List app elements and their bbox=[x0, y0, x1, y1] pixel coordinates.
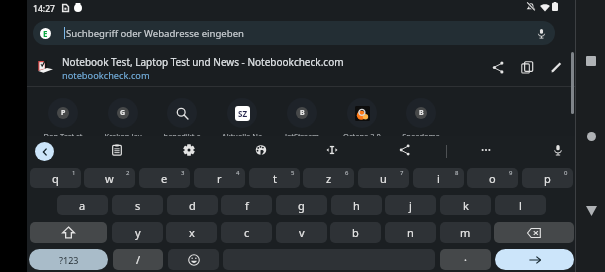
staticText: 4 bbox=[236, 169, 240, 177]
button[interactable] bbox=[168, 249, 219, 270]
staticText: B bbox=[300, 108, 305, 118]
staticText: 2 bbox=[126, 169, 130, 177]
staticText: 8 bbox=[455, 169, 459, 177]
button[interactable]: . bbox=[440, 249, 491, 270]
button[interactable]: s bbox=[112, 195, 163, 215]
staticText: d bbox=[189, 198, 196, 213]
button[interactable]: Keyboard action bbox=[251, 140, 271, 160]
staticText: Aktuelle Na bbox=[212, 131, 272, 141]
staticText: m bbox=[460, 225, 471, 240]
button[interactable] bbox=[347, 98, 377, 128]
staticText: Suchbegriff oder Webadresse eingeben bbox=[66, 27, 245, 40]
button[interactable]: w bbox=[84, 168, 135, 188]
button[interactable]: Notebook Test, Laptop Test und News - No… bbox=[27, 48, 575, 88]
button[interactable]: l bbox=[495, 195, 546, 215]
button[interactable]: o bbox=[467, 168, 518, 188]
staticText: 5 bbox=[291, 169, 295, 177]
button[interactable]: B bbox=[287, 98, 317, 128]
button[interactable]: f bbox=[221, 195, 272, 215]
button[interactable]: q bbox=[30, 168, 81, 188]
staticText: Speedome bbox=[391, 131, 451, 141]
button[interactable]: Keyboard action bbox=[322, 140, 342, 160]
staticText: w bbox=[105, 171, 114, 186]
button[interactable]: p bbox=[522, 168, 573, 188]
button[interactable]: Keyboard action bbox=[476, 140, 496, 160]
button[interactable]: P bbox=[48, 98, 78, 128]
staticText: y bbox=[135, 225, 141, 240]
button[interactable]: m bbox=[440, 222, 491, 243]
button[interactable]: g bbox=[276, 195, 327, 215]
button[interactable]: Keyboard action bbox=[179, 140, 199, 160]
staticText: G bbox=[120, 108, 126, 118]
staticText: . bbox=[464, 249, 467, 264]
staticText: i bbox=[437, 171, 440, 186]
button[interactable]: Home bbox=[579, 124, 603, 148]
button[interactable]: a bbox=[57, 195, 108, 215]
button[interactable]: Recents bbox=[579, 49, 603, 73]
staticText: ?123 bbox=[59, 254, 79, 266]
button[interactable]: y bbox=[112, 222, 163, 243]
button[interactable] bbox=[167, 98, 197, 128]
staticText: JetStream bbox=[272, 131, 332, 141]
button[interactable]: i bbox=[413, 168, 464, 188]
staticText: s bbox=[135, 198, 141, 213]
button[interactable]: u bbox=[358, 168, 409, 188]
staticText: h bbox=[353, 198, 360, 213]
button[interactable]: G bbox=[108, 98, 138, 128]
button[interactable]: k bbox=[440, 195, 491, 215]
button[interactable] bbox=[495, 249, 574, 270]
staticText: SZ bbox=[238, 108, 248, 119]
staticText: 14:27 bbox=[33, 3, 56, 15]
button[interactable]: SZ bbox=[227, 98, 257, 128]
staticText: g bbox=[298, 198, 305, 213]
button[interactable]: Keyboard action bbox=[107, 140, 127, 160]
button[interactable]: t bbox=[249, 168, 300, 188]
button[interactable] bbox=[30, 222, 107, 243]
staticText: 6 bbox=[345, 169, 349, 177]
staticText: l bbox=[519, 198, 522, 213]
staticText: p bbox=[544, 171, 551, 186]
staticText: x bbox=[189, 225, 195, 240]
button[interactable]: d bbox=[167, 195, 218, 215]
button[interactable]: x bbox=[166, 222, 217, 243]
staticText: k bbox=[463, 198, 469, 213]
button[interactable]: E bbox=[33, 21, 555, 45]
other: Share bbox=[492, 61, 505, 74]
other: Voice search bbox=[536, 28, 547, 39]
staticText: Krakon Jav bbox=[93, 131, 153, 141]
button[interactable]: Back bbox=[579, 199, 603, 223]
button[interactable]: b bbox=[330, 222, 381, 243]
staticText: a bbox=[79, 198, 86, 213]
button[interactable]: v bbox=[276, 222, 327, 243]
staticText: benedikt-s bbox=[152, 131, 212, 141]
button[interactable]: Back bbox=[35, 142, 54, 161]
staticText: 7 bbox=[400, 169, 404, 177]
staticText: o bbox=[489, 171, 496, 186]
button[interactable]: Keyboard action bbox=[395, 140, 415, 160]
button[interactable]: c bbox=[221, 222, 272, 243]
other: Copy bbox=[521, 61, 534, 74]
staticText: Octane 2.0 bbox=[332, 131, 392, 141]
button[interactable] bbox=[494, 222, 574, 243]
button[interactable]: B bbox=[406, 98, 436, 128]
button[interactable]: / bbox=[113, 249, 163, 270]
button[interactable]: h bbox=[331, 195, 382, 215]
button[interactable]: ?123 bbox=[29, 249, 108, 270]
staticText: t bbox=[273, 171, 277, 186]
staticText: 3 bbox=[181, 169, 185, 177]
staticText: v bbox=[299, 225, 305, 240]
staticText: e bbox=[161, 171, 168, 186]
staticText: 0 bbox=[564, 169, 568, 177]
staticText: Don Test st bbox=[33, 131, 93, 141]
button[interactable]: n bbox=[385, 222, 436, 243]
staticText: b bbox=[352, 225, 359, 240]
button[interactable]: Keyboard action bbox=[548, 140, 568, 160]
staticText: j bbox=[409, 198, 412, 213]
button[interactable]: r bbox=[194, 168, 245, 188]
button[interactable]: e bbox=[139, 168, 190, 188]
button[interactable]: z bbox=[303, 168, 354, 188]
button[interactable]: j bbox=[385, 195, 436, 215]
other: Edit bbox=[550, 61, 563, 74]
staticText: notebookcheck.com bbox=[62, 69, 150, 82]
